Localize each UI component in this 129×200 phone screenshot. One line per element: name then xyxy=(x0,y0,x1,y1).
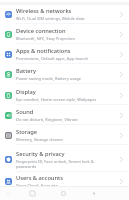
staticText: Apps & notifications xyxy=(16,47,71,55)
staticText: Sound xyxy=(16,108,34,116)
button[interactable]: Battery xyxy=(0,64,129,84)
staticText: Security & privacy xyxy=(16,150,65,158)
staticText: Wi-Fi, Dual SIM settings, Mobile data xyxy=(16,16,85,21)
button[interactable]: Recent apps xyxy=(27,188,37,198)
staticText: Eye comfort, Home screen style, Wallpape… xyxy=(16,97,97,102)
staticText: Storage xyxy=(16,128,38,136)
staticText: Power saving mode, Battery usage xyxy=(16,76,82,81)
button[interactable]: Sound xyxy=(0,105,129,125)
button[interactable]: Wireless & networks xyxy=(0,4,129,24)
staticText: Oppo Cloud, Accounts xyxy=(16,183,58,188)
staticText: Users & accounts xyxy=(16,174,63,182)
staticText: Memory, Storage cleaner xyxy=(16,137,64,142)
button[interactable]: Apps & notifications xyxy=(0,44,129,64)
staticText: Device connection xyxy=(16,27,66,35)
staticText: Display xyxy=(16,88,36,96)
staticText: Do not disturb, Ringtone, Vibrate xyxy=(16,117,78,122)
button[interactable]: Back xyxy=(88,188,98,198)
staticText: Permissions, Default apps, App launch xyxy=(16,56,88,61)
staticText: Fingerprint ID, Face unlock, Screen lock… xyxy=(16,159,94,169)
button[interactable]: Users & accounts xyxy=(0,171,129,191)
button[interactable]: Hide navigation bar xyxy=(4,189,13,198)
staticText: Bluetooth, NFC, Easy Projection xyxy=(16,36,75,41)
button[interactable]: Device connection xyxy=(0,24,129,44)
staticText: Battery xyxy=(16,67,37,75)
button[interactable]: Display xyxy=(0,85,129,105)
button[interactable]: Security & privacy xyxy=(0,146,129,172)
button[interactable]: Home xyxy=(58,188,68,198)
staticText: Wireless & networks xyxy=(16,7,72,15)
button[interactable]: Storage xyxy=(0,125,129,145)
